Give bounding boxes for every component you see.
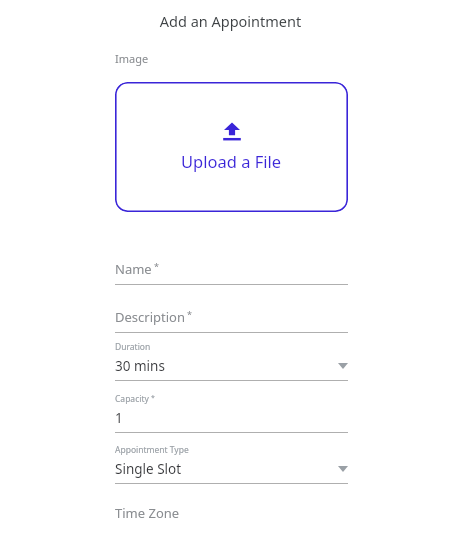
button[interactable]: Time Zone xyxy=(115,504,348,528)
staticText: * xyxy=(187,308,192,320)
staticText: Name xyxy=(115,260,152,278)
staticText: * xyxy=(151,393,155,403)
staticText: 1 xyxy=(115,409,348,427)
staticText: Upload a File xyxy=(181,150,282,172)
button[interactable]: Duration xyxy=(115,341,348,381)
staticText: Appointment Type xyxy=(115,444,189,456)
staticText: * xyxy=(154,260,159,272)
staticText: Time Zone xyxy=(115,504,180,522)
staticText: Description xyxy=(115,308,185,326)
button[interactable]: Capacity xyxy=(115,393,348,433)
button[interactable]: Description xyxy=(115,308,348,333)
button[interactable]: Upload a File xyxy=(115,82,348,212)
button[interactable]: Name xyxy=(115,260,348,285)
staticText: Single Slot xyxy=(115,460,338,478)
button[interactable]: Appointment Type xyxy=(115,444,348,484)
staticText: Add an Appointment xyxy=(0,11,461,31)
staticText: Duration xyxy=(115,341,151,353)
staticText: Image xyxy=(115,51,149,66)
staticText: Capacity xyxy=(115,393,149,405)
staticText: 30 mins xyxy=(115,357,338,375)
